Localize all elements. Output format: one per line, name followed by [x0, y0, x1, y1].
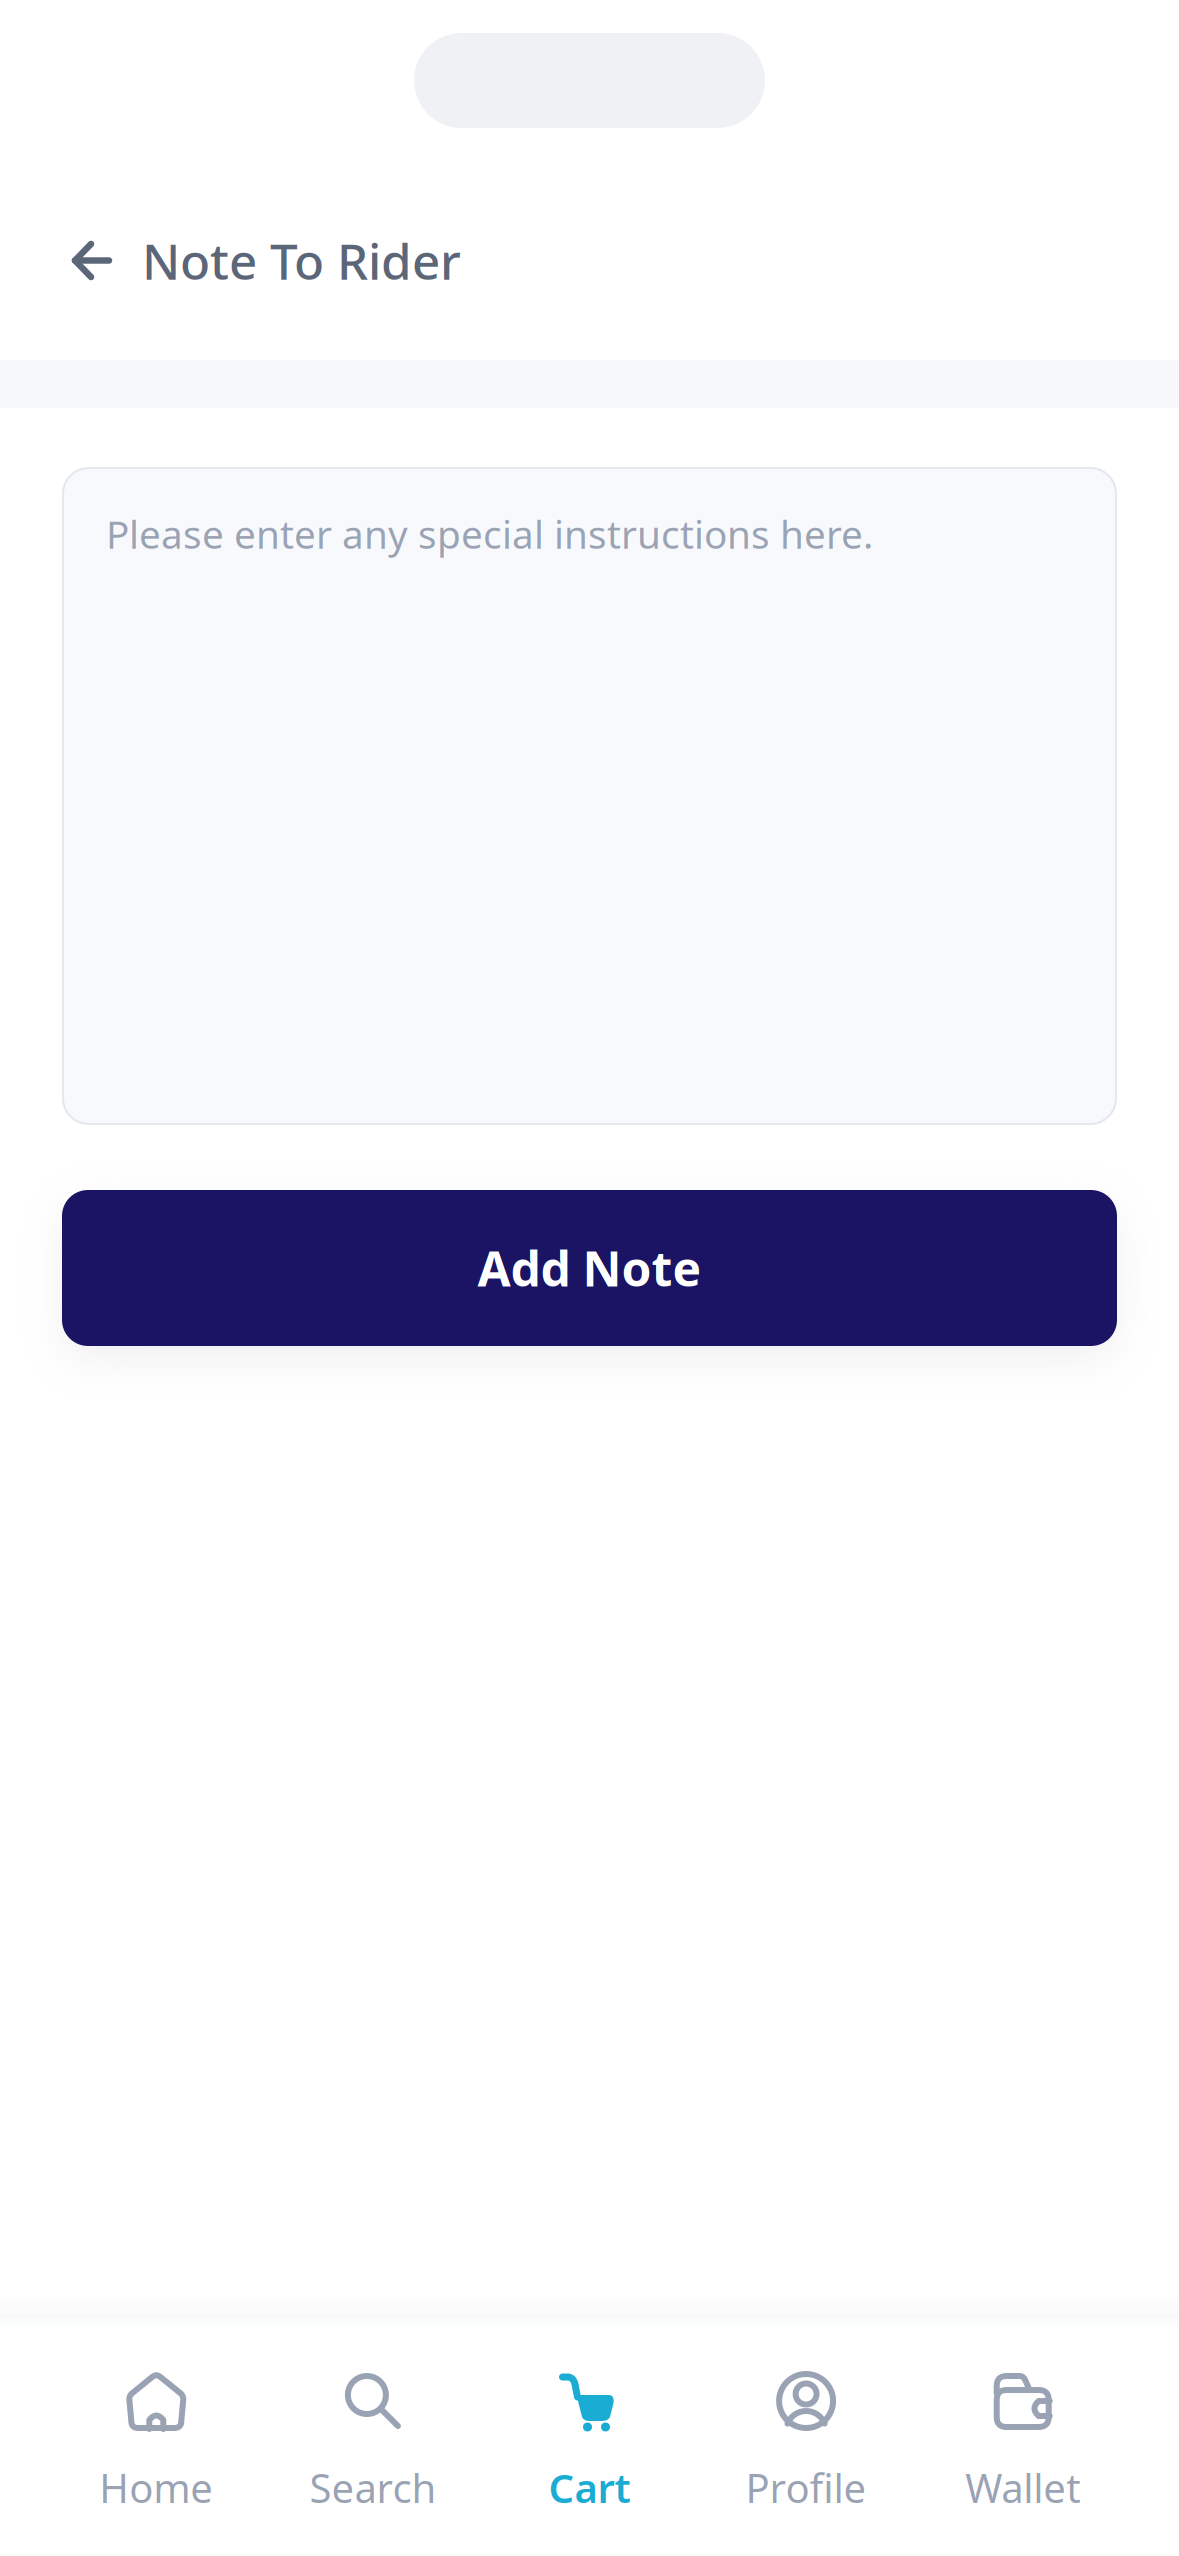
button[interactable]: Profile	[698, 2330, 914, 2526]
staticText: Cart	[548, 2461, 630, 2514]
staticText: Home	[99, 2461, 213, 2514]
button[interactable]: Cart	[481, 2330, 698, 2526]
button[interactable]: Search	[265, 2330, 481, 2526]
staticText: Add Note	[477, 1236, 701, 1300]
staticText: Profile	[746, 2461, 867, 2514]
button[interactable]: Home	[48, 2330, 265, 2526]
button[interactable]: Please enter any special instructions he…	[62, 467, 1117, 1125]
button[interactable]: Add Note	[62, 1190, 1117, 1346]
staticText: Please enter any special instructions he…	[106, 508, 873, 559]
staticText: Note To Rider	[142, 228, 461, 293]
staticText: Wallet	[965, 2461, 1080, 2514]
button[interactable]: Back	[60, 228, 124, 292]
button[interactable]: Wallet	[914, 2330, 1131, 2526]
staticText: Search	[309, 2461, 436, 2514]
